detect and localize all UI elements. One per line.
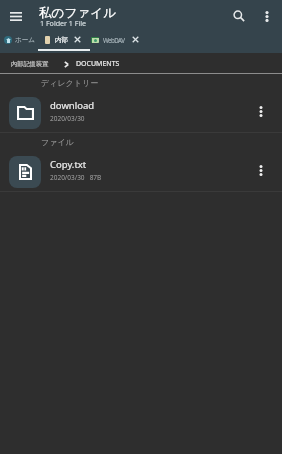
button[interactable]: More options bbox=[256, 5, 278, 27]
button[interactable]: 内部記憶装置 bbox=[11, 60, 49, 68]
staticText: 2020/03/30 bbox=[50, 114, 85, 123]
button[interactable]: Close internal tab bbox=[71, 33, 84, 46]
button[interactable]: Item options bbox=[248, 98, 274, 124]
staticText: 私のファイル bbox=[39, 5, 117, 21]
button[interactable]: Close WebDAV tab bbox=[129, 33, 142, 46]
button[interactable]: 内部 bbox=[45, 36, 69, 44]
button[interactable]: Search bbox=[228, 5, 250, 27]
button[interactable]: download bbox=[0, 93, 282, 132]
button[interactable]: WebDAV bbox=[91, 36, 125, 44]
staticText: 内部 bbox=[55, 36, 69, 44]
button[interactable]: DOCUMENTS bbox=[76, 59, 120, 69]
button[interactable]: Item options bbox=[248, 157, 274, 183]
button[interactable]: ホーム bbox=[4, 36, 36, 44]
staticText: 1 Folder 1 File bbox=[40, 18, 87, 28]
staticText: 2020/03/30 87B bbox=[50, 173, 102, 182]
staticText: ファイル bbox=[41, 137, 74, 147]
staticText: download bbox=[50, 99, 95, 112]
staticText: WebDAV bbox=[103, 36, 125, 44]
button[interactable]: Navigation menu bbox=[5, 5, 27, 27]
staticText: Copy.txt bbox=[50, 158, 87, 171]
staticText: ディレクトリー bbox=[41, 78, 99, 88]
button[interactable]: Copy.txt bbox=[0, 152, 282, 191]
staticText: ホーム bbox=[15, 36, 36, 44]
